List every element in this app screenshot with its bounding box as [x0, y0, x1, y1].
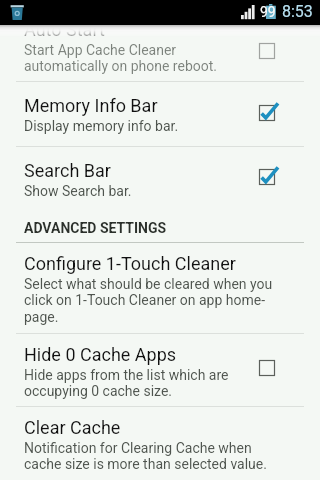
- other: Battery 99 percent: [265, 3, 277, 19]
- staticText: Start App Cache Cleaner automatically on…: [24, 42, 217, 75]
- staticText: Configure 1-Touch Cleaner: [24, 253, 236, 274]
- button[interactable]: Disabled: [245, 346, 289, 390]
- staticText: Auto Start: [24, 19, 105, 40]
- staticText: 99: [260, 4, 276, 20]
- staticText: Show Search bar.: [24, 183, 132, 199]
- button[interactable]: Enabled: [245, 91, 289, 135]
- other: Signal strength: [241, 4, 257, 20]
- staticText: 8:53: [282, 2, 313, 21]
- staticText: Memory Info Bar: [24, 95, 158, 116]
- staticText: Notification for Clearing Cache when cac…: [24, 440, 267, 473]
- button[interactable]: Search Bar: [0, 147, 320, 206]
- button[interactable]: Enabled: [245, 155, 289, 199]
- staticText: Select what should be cleared when you c…: [24, 276, 273, 326]
- button[interactable]: Disabled: [245, 29, 289, 73]
- other: App Cache Cleaner notification: [10, 4, 26, 22]
- button[interactable]: Auto Start: [0, 6, 320, 87]
- staticText: Clear Cache: [24, 417, 121, 438]
- button[interactable]: Configure 1-Touch Cleaner: [0, 243, 320, 333]
- staticText: Display memory info bar.: [24, 118, 179, 134]
- staticText: Hide 0 Cache Apps: [24, 344, 177, 365]
- staticText: ADVANCED SETTINGS: [24, 220, 167, 236]
- staticText: Search Bar: [24, 160, 111, 181]
- staticText: Hide apps from the list which are occupy…: [24, 367, 229, 400]
- button[interactable]: Clear Cache: [0, 407, 320, 479]
- button[interactable]: Hide 0 Cache Apps: [0, 334, 320, 406]
- button[interactable]: Memory Info Bar: [0, 82, 320, 146]
